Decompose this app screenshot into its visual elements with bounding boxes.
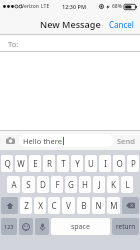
staticText: Hello there — [23, 136, 62, 146]
staticText: F — [55, 179, 60, 190]
staticText: 68% — [112, 3, 122, 10]
button[interactable]: Send — [117, 133, 135, 148]
button[interactable]: E — [29, 155, 41, 172]
button[interactable]: S — [22, 176, 35, 193]
staticText: Send — [117, 136, 135, 146]
button[interactable]: Camera — [4, 134, 17, 147]
staticText: New Message — [40, 18, 101, 30]
staticText: C — [51, 200, 57, 211]
button[interactable]: G — [65, 176, 77, 193]
button[interactable]: Y — [71, 155, 83, 172]
button[interactable]: Hello there — [19, 134, 114, 147]
button[interactable]: To: — [0, 35, 140, 52]
staticText: Y — [75, 158, 80, 169]
staticText: Verizon — [21, 3, 39, 10]
staticText: U — [88, 158, 94, 169]
staticText: S — [26, 179, 31, 190]
staticText: space — [71, 222, 90, 232]
staticText: M — [110, 200, 118, 211]
staticText: T — [61, 158, 66, 169]
button[interactable]: W — [15, 155, 27, 172]
button[interactable]: H — [79, 176, 91, 193]
button[interactable]: V — [62, 197, 75, 214]
button[interactable]: Z — [20, 197, 32, 214]
button[interactable]: space — [51, 218, 110, 235]
button[interactable]: Dictation — [35, 218, 49, 235]
button[interactable]: U — [85, 155, 97, 172]
button[interactable]: return — [112, 218, 139, 235]
button[interactable]: Shift — [1, 197, 18, 214]
staticText: Cancel — [109, 19, 134, 30]
staticText: B — [81, 200, 87, 211]
button[interactable]: Backspace — [122, 197, 139, 214]
button[interactable]: F — [51, 176, 63, 193]
staticText: LTE — [41, 3, 50, 10]
button[interactable]: D — [37, 176, 49, 193]
button[interactable]: O — [113, 155, 125, 172]
staticText: 123 — [4, 223, 14, 230]
staticText: W — [17, 158, 25, 169]
staticText: P — [131, 158, 136, 169]
staticText: E — [33, 158, 38, 169]
button[interactable]: J — [93, 176, 105, 193]
staticText: R — [47, 158, 52, 169]
staticText: V — [66, 200, 71, 211]
staticText: H — [82, 179, 88, 190]
button[interactable]: B — [77, 197, 90, 214]
staticText: return — [116, 222, 136, 231]
staticText: 12:30 PM — [62, 3, 87, 10]
button[interactable]: I — [99, 155, 111, 172]
staticText: J — [98, 179, 101, 190]
button[interactable]: R — [43, 155, 55, 172]
button[interactable]: X — [34, 197, 46, 214]
staticText: K — [111, 179, 116, 190]
staticText: L — [125, 179, 130, 190]
staticText: G — [68, 179, 74, 190]
button[interactable]: Emoji — [19, 218, 33, 235]
staticText: N — [95, 200, 102, 211]
button[interactable]: N — [92, 197, 105, 214]
button[interactable]: M — [107, 197, 120, 214]
button[interactable]: Q — [1, 155, 13, 172]
staticText: X — [38, 200, 43, 211]
staticText: I — [104, 158, 107, 169]
button[interactable]: 123 — [1, 218, 17, 235]
button[interactable]: L — [121, 176, 133, 193]
staticText: O — [116, 158, 123, 169]
staticText: Z — [24, 200, 29, 211]
staticText: D — [40, 179, 46, 190]
button[interactable]: A — [7, 176, 20, 193]
button[interactable]: T — [57, 155, 69, 172]
staticText: A — [11, 179, 17, 190]
button[interactable]: Cancel — [103, 13, 140, 35]
button[interactable]: C — [48, 197, 60, 214]
button[interactable]: K — [107, 176, 119, 193]
button[interactable]: P — [127, 155, 139, 172]
staticText: Q — [4, 158, 11, 169]
staticText: To: — [8, 39, 19, 49]
